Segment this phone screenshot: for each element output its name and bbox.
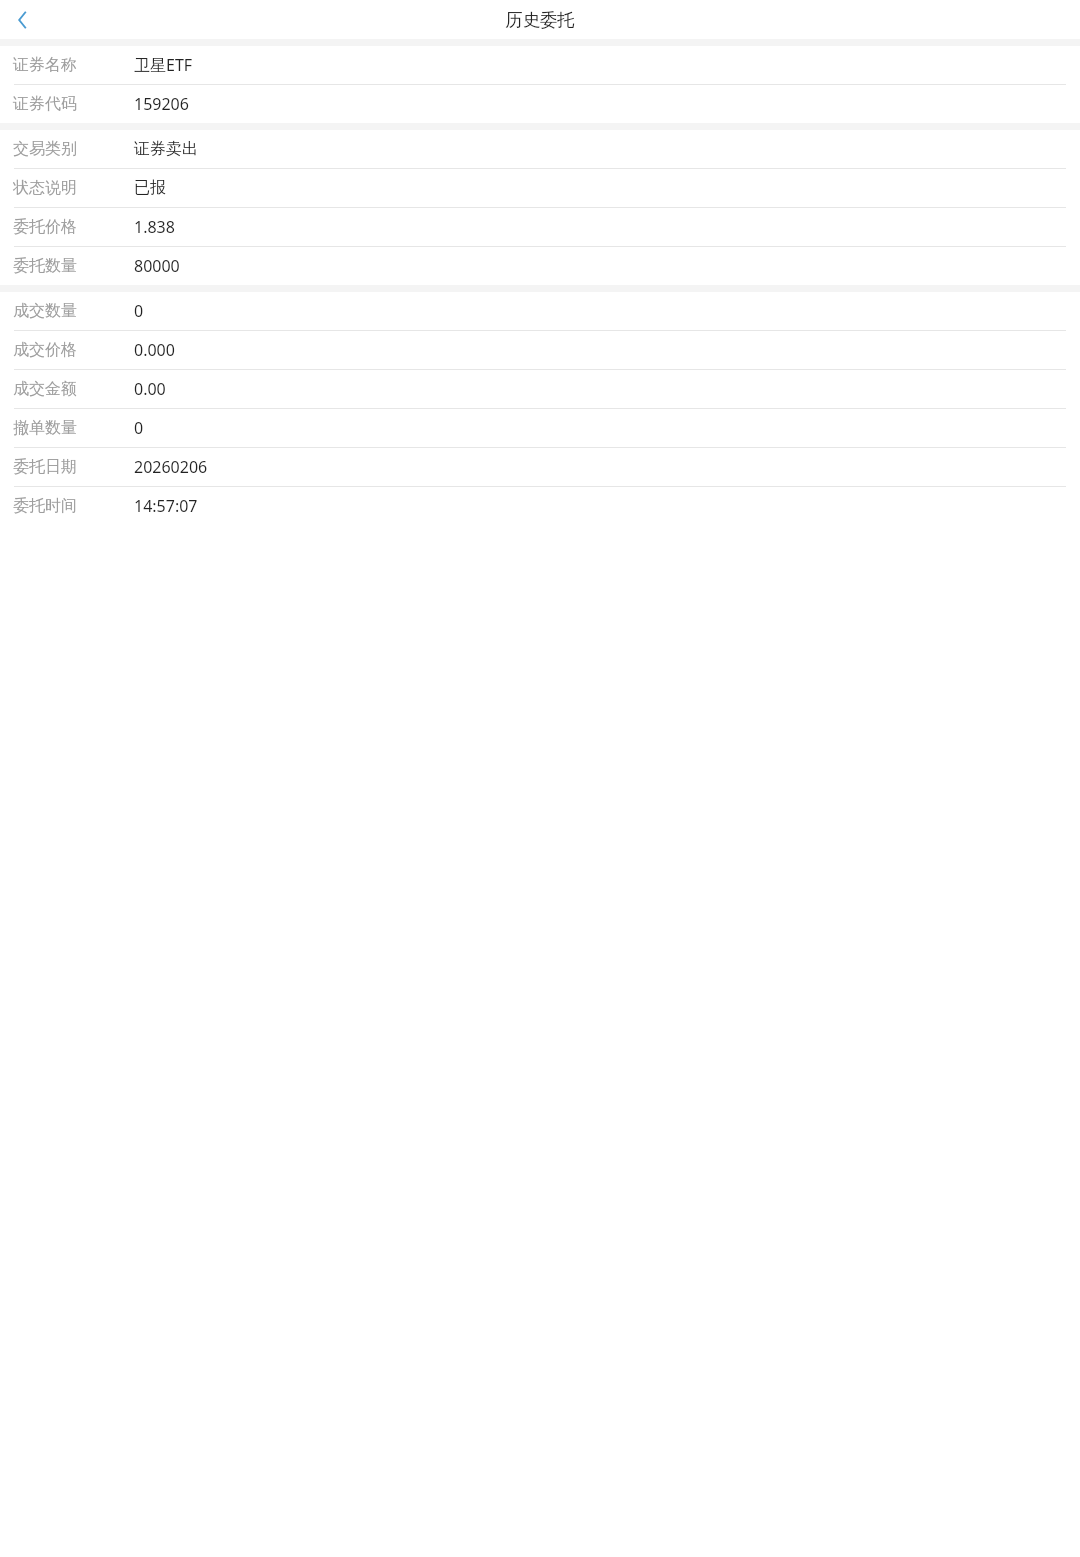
button[interactable]: 委托价格	[0, 208, 1080, 246]
staticText: 成交数量	[13, 301, 77, 321]
button[interactable]: 成交金额	[0, 370, 1080, 408]
button[interactable]: Back	[8, 5, 37, 34]
button[interactable]: 证券代码	[0, 85, 1080, 123]
staticText: 委托时间	[13, 496, 77, 516]
staticText: 已报	[134, 178, 166, 198]
staticText: 成交价格	[13, 340, 77, 360]
staticText: 0	[134, 417, 144, 439]
button[interactable]: 撤单数量	[0, 409, 1080, 447]
button[interactable]: 委托日期	[0, 448, 1080, 486]
staticText: 卫星ETF	[134, 54, 193, 76]
staticText: 撤单数量	[13, 418, 77, 438]
staticText: 0.00	[134, 378, 166, 400]
button[interactable]: 证券名称	[0, 46, 1080, 84]
staticText: 交易类别	[13, 139, 77, 159]
staticText: 0.000	[134, 339, 175, 361]
staticText: 历史委托	[505, 9, 575, 31]
staticText: 80000	[134, 255, 180, 277]
button[interactable]: 状态说明	[0, 169, 1080, 207]
staticText: 20260206	[134, 456, 208, 478]
button[interactable]: 交易类别	[0, 130, 1080, 168]
staticText: 证券名称	[13, 55, 77, 75]
staticText: 证券代码	[13, 94, 77, 114]
staticText: 证券卖出	[134, 139, 198, 159]
staticText: 0	[134, 300, 144, 322]
staticText: 1.838	[134, 216, 175, 238]
button[interactable]: 委托数量	[0, 247, 1080, 285]
staticText: 委托数量	[13, 256, 77, 276]
button[interactable]: 委托时间	[0, 487, 1080, 525]
staticText: 成交金额	[13, 379, 77, 399]
staticText: 委托价格	[13, 217, 77, 237]
staticText: 委托日期	[13, 457, 77, 477]
button[interactable]: 成交价格	[0, 331, 1080, 369]
staticText: 状态说明	[13, 178, 77, 198]
staticText: 14:57:07	[134, 495, 198, 517]
staticText: 159206	[134, 93, 189, 115]
button[interactable]: 成交数量	[0, 292, 1080, 330]
